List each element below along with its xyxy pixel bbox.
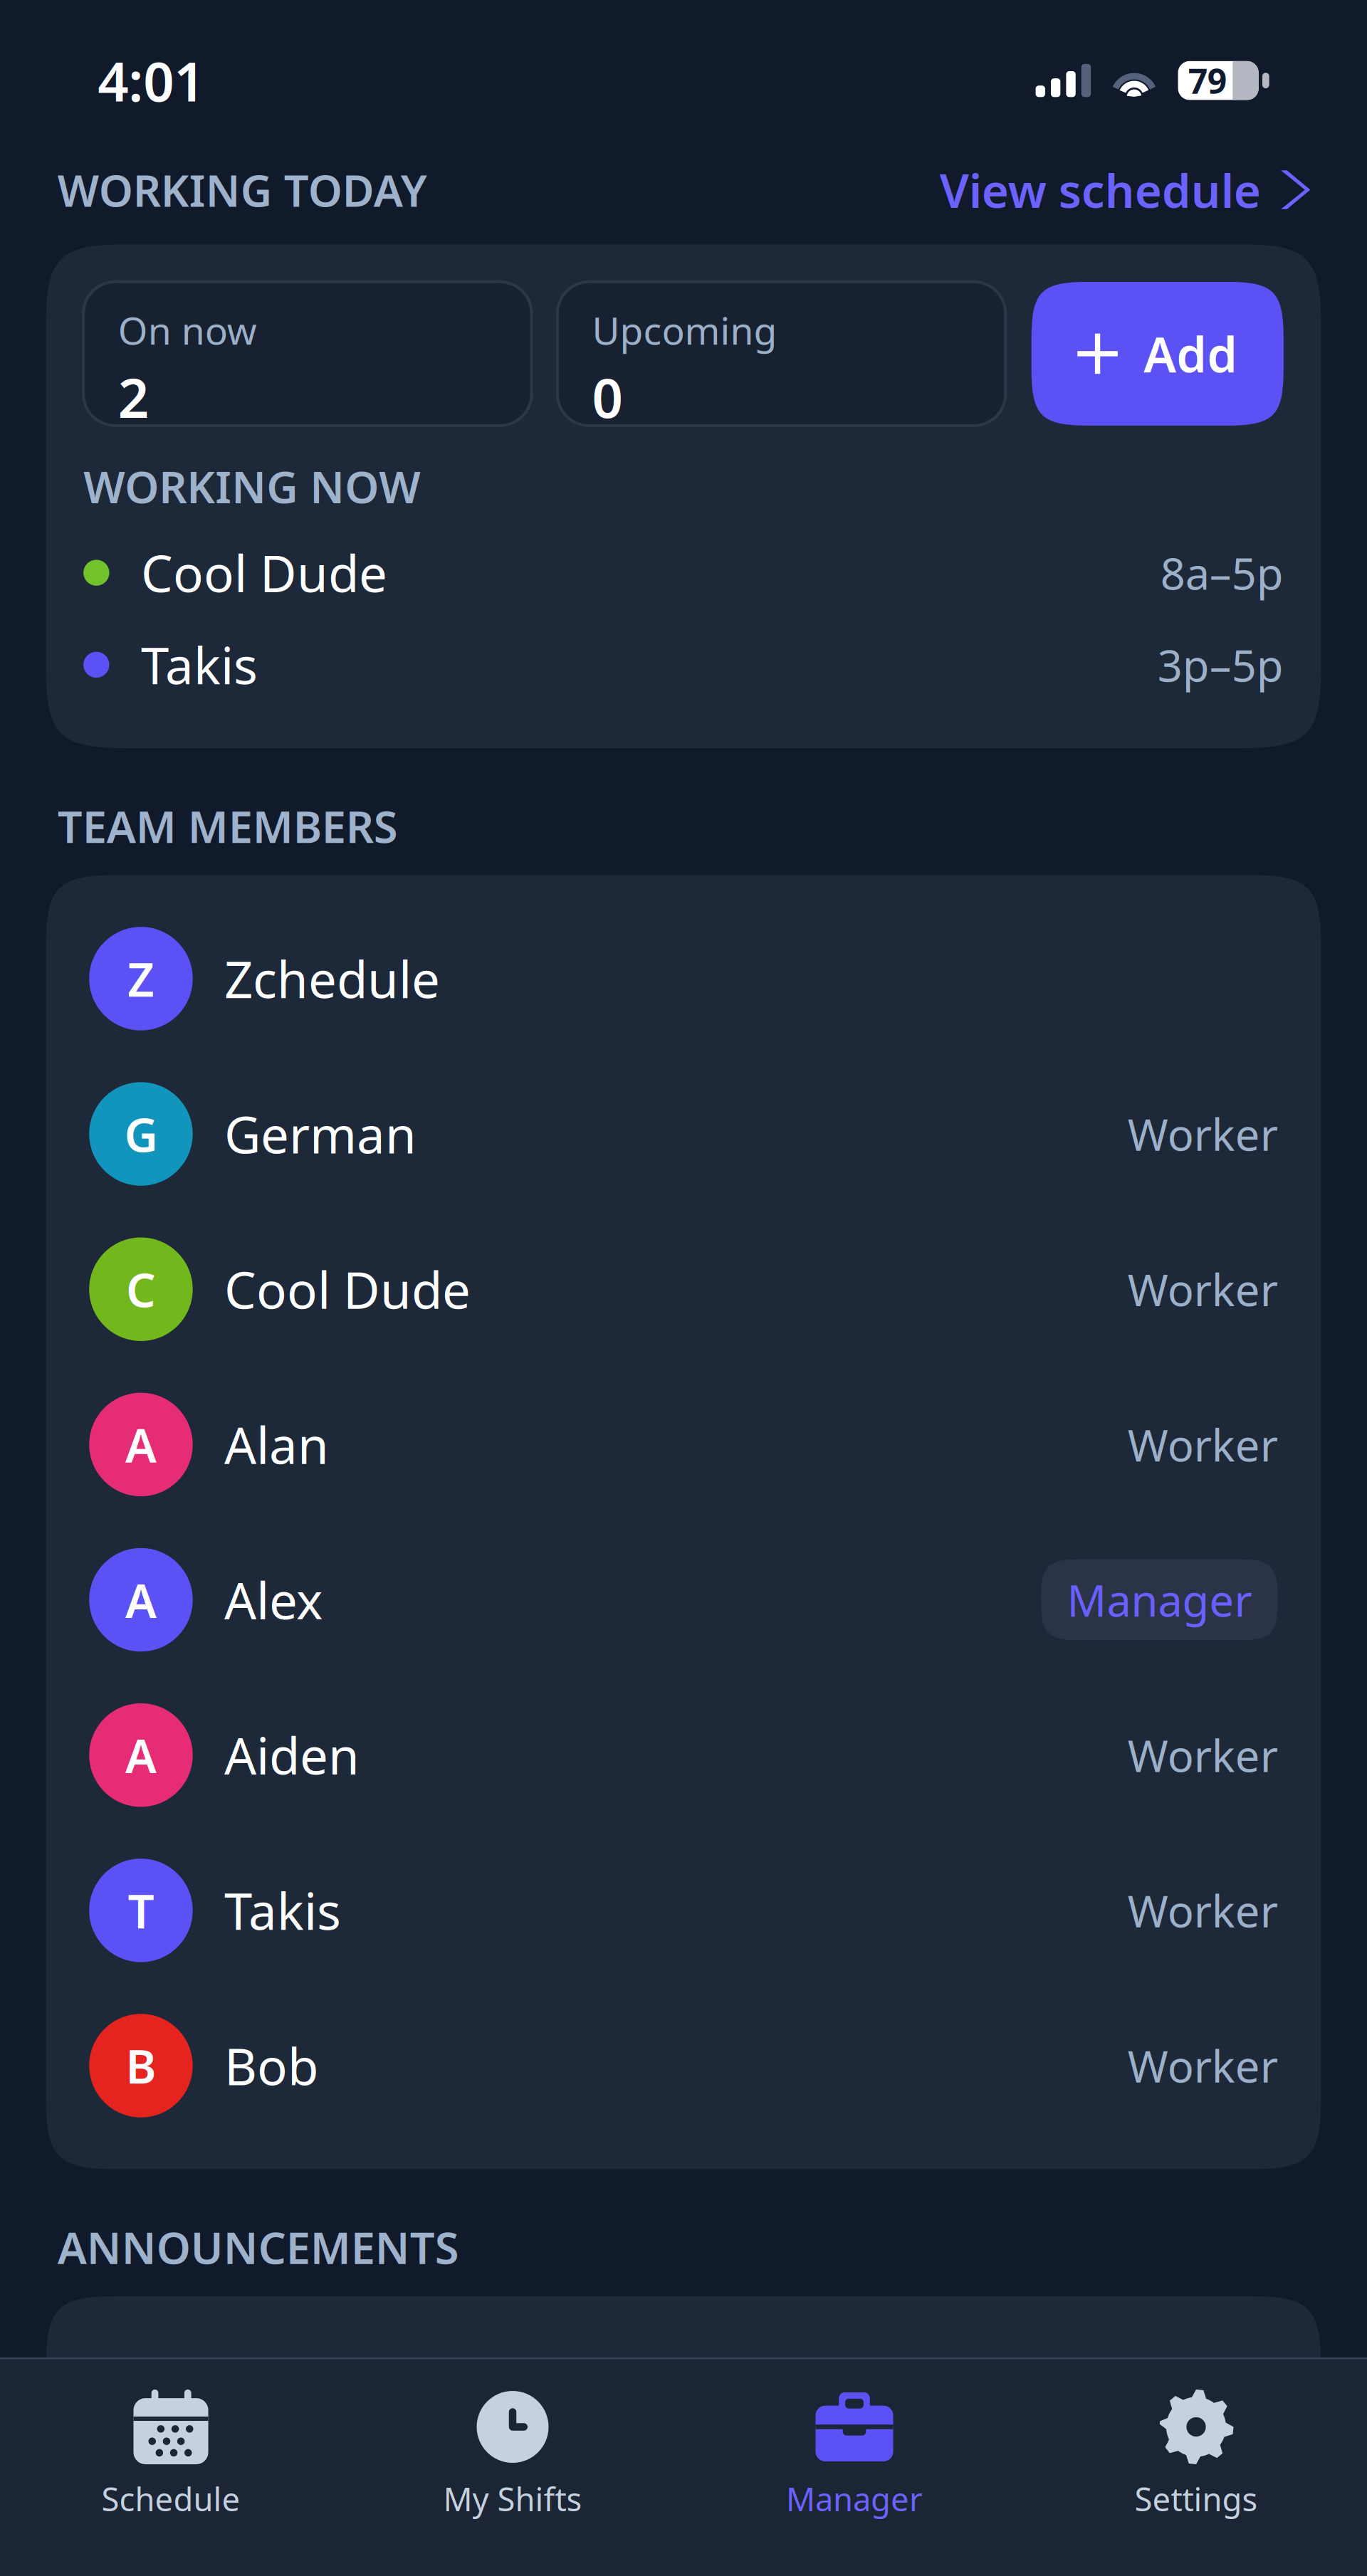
staticText: B xyxy=(126,2035,156,2097)
button[interactable]: Settings xyxy=(1025,2379,1367,2529)
button[interactable]: A xyxy=(46,1522,1321,1677)
staticText: 79 xyxy=(1188,58,1227,103)
button[interactable]: Manager xyxy=(683,2379,1025,2529)
staticText: ANNOUNCEMENTS xyxy=(58,2218,459,2276)
staticText: View schedule xyxy=(940,159,1261,221)
staticText: T xyxy=(128,1880,154,1941)
staticText: Worker xyxy=(1128,1105,1278,1163)
button[interactable]: My Shifts xyxy=(342,2379,683,2529)
staticText: Worker xyxy=(1128,2037,1278,2095)
staticText: Cool Dude xyxy=(224,1256,471,1323)
staticText: Bob xyxy=(224,2032,318,2099)
staticText: Alan xyxy=(224,1411,329,1478)
staticText: WORKING NOW xyxy=(83,457,420,515)
staticText: Aiden xyxy=(224,1722,360,1788)
button[interactable]: Schedule xyxy=(0,2379,342,2529)
staticText: C xyxy=(126,1258,156,1320)
staticText: Manager xyxy=(1067,1571,1252,1629)
staticText: Upcoming xyxy=(592,305,777,355)
staticText: Add xyxy=(1144,322,1238,386)
button[interactable]: A xyxy=(46,1677,1321,1833)
button[interactable]: Z xyxy=(46,901,1321,1056)
staticText: German xyxy=(224,1101,417,1167)
staticText: My Shifts xyxy=(443,2477,582,2520)
staticText: Worker xyxy=(1128,1260,1278,1318)
staticText: 4:01 xyxy=(98,45,205,116)
staticText: Worker xyxy=(1128,1416,1278,1473)
staticText: A xyxy=(125,1569,157,1631)
staticText: 8a–5p xyxy=(1160,544,1284,602)
staticText: Z xyxy=(127,948,154,1010)
staticText: A xyxy=(125,1414,157,1475)
staticText: Alex xyxy=(224,1566,323,1633)
staticText: Zchedule xyxy=(224,945,440,1012)
button[interactable]: T xyxy=(46,1833,1321,1988)
button[interactable]: B xyxy=(46,1988,1321,2143)
staticText: Schedule xyxy=(101,2477,240,2520)
staticText: Takis xyxy=(224,1877,341,1944)
staticText: WORKING TODAY xyxy=(58,161,427,219)
button[interactable]: Add xyxy=(1031,282,1284,426)
button[interactable]: C xyxy=(46,1212,1321,1367)
staticText: Manager xyxy=(786,2477,923,2520)
staticText: Takis xyxy=(141,631,258,698)
staticText: A xyxy=(125,1724,157,1786)
staticText: On now xyxy=(118,305,257,355)
button[interactable]: G xyxy=(46,1056,1321,1212)
button[interactable]: View schedule xyxy=(940,159,1309,221)
staticText: Worker xyxy=(1128,1726,1278,1784)
staticText: 0 xyxy=(592,361,623,433)
staticText: Worker xyxy=(1128,1881,1278,1939)
staticText: Settings xyxy=(1135,2477,1258,2520)
staticText: 3p–5p xyxy=(1158,636,1284,694)
staticText: G xyxy=(124,1103,158,1165)
button[interactable]: A xyxy=(46,1367,1321,1522)
staticText: Cool Dude xyxy=(141,539,387,606)
staticText: TEAM MEMBERS xyxy=(58,797,398,855)
staticText: 2 xyxy=(118,361,149,433)
